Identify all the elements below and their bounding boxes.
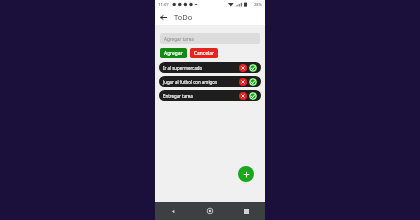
- staticText: 28%: [254, 2, 262, 7]
- button[interactable]: Home: [191, 202, 228, 220]
- button[interactable]: Entregar tarea: [159, 90, 261, 101]
- button[interactable]: Complete task: [249, 92, 257, 100]
- button[interactable]: Cancelar: [190, 48, 218, 58]
- button[interactable]: Back: [155, 202, 191, 220]
- staticText: Cancelar: [194, 50, 214, 57]
- button[interactable]: Jugar al futbol con amigos: [159, 76, 261, 87]
- button[interactable]: Recent apps: [228, 202, 265, 220]
- staticText: 11:07: [158, 2, 169, 8]
- button[interactable]: Delete task: [239, 64, 247, 72]
- staticText: ToDo: [174, 12, 193, 22]
- button[interactable]: Complete task: [249, 64, 257, 72]
- button[interactable]: Complete task: [249, 78, 257, 86]
- staticText: Agregar: [164, 50, 183, 57]
- button[interactable]: Delete task: [239, 78, 247, 86]
- staticText: Jugar al futbol con amigos: [163, 79, 237, 85]
- button[interactable]: Agregar tarea: [160, 33, 260, 44]
- button[interactable]: Ir al supermercado: [159, 62, 261, 73]
- staticText: Agregar tarea: [164, 36, 194, 42]
- button[interactable]: Add task: [238, 166, 254, 182]
- button[interactable]: Delete task: [239, 92, 247, 100]
- staticText: Entregar tarea: [163, 93, 237, 99]
- button[interactable]: Agregar: [160, 48, 187, 58]
- staticText: Ir al supermercado: [163, 65, 237, 71]
- button[interactable]: Back: [158, 12, 169, 23]
